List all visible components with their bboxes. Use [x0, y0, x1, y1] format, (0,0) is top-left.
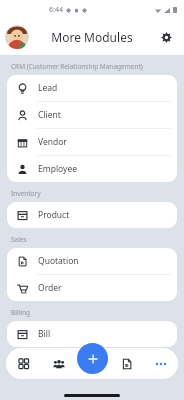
- staticText: Quotation: [38, 255, 79, 267]
- staticText: Inventory: [11, 189, 41, 198]
- staticText: Order: [38, 282, 62, 294]
- staticText: Client: [38, 109, 61, 121]
- staticText: CRM (Customer Relationship Management): [11, 62, 143, 71]
- button[interactable]: Employee: [7, 156, 177, 182]
- staticText: Sales: [11, 235, 27, 244]
- button[interactable]: Bill: [7, 321, 177, 347]
- staticText: Employee: [38, 163, 77, 175]
- button[interactable]: Contacts: [41, 348, 76, 379]
- button[interactable]: Settings: [156, 27, 176, 47]
- button[interactable]: Add: [77, 343, 108, 374]
- staticText: Product: [38, 209, 70, 221]
- button[interactable]: Dashboard: [6, 348, 41, 379]
- button[interactable]: Documents: [110, 348, 144, 379]
- button[interactable]: Profile: [5, 25, 29, 49]
- button[interactable]: Order: [7, 275, 177, 301]
- button[interactable]: More: [144, 348, 178, 379]
- staticText: 6:44: [49, 5, 63, 15]
- staticText: Billing: [11, 308, 30, 317]
- button[interactable]: Lead: [7, 75, 177, 101]
- button[interactable]: Vendor: [7, 129, 177, 155]
- button[interactable]: Client: [7, 102, 177, 128]
- staticText: More Modules: [51, 29, 133, 45]
- staticText: Lead: [38, 82, 58, 94]
- staticText: Vendor: [38, 136, 67, 148]
- button[interactable]: Quotation: [7, 248, 177, 274]
- staticText: Bill: [38, 328, 51, 340]
- button[interactable]: Product: [7, 202, 177, 228]
